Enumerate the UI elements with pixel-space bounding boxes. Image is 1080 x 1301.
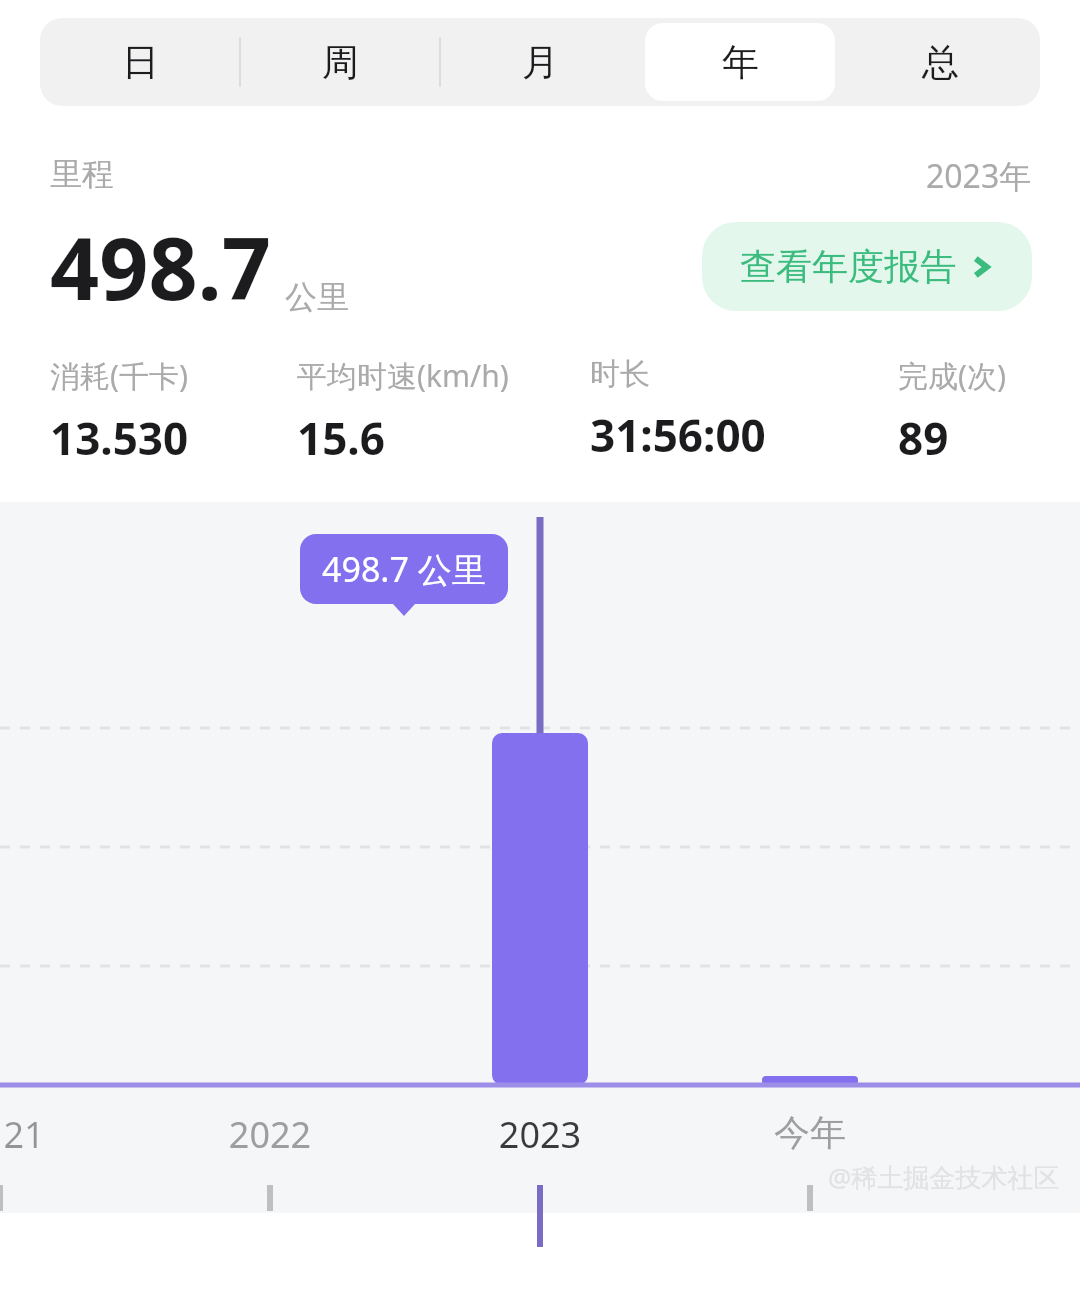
staticText: 年 (722, 39, 759, 86)
staticText: 31:56:00 (590, 405, 766, 465)
button[interactable]: 日 (45, 23, 235, 101)
staticText: 消耗(千卡) (50, 355, 188, 396)
staticText: 今年 (758, 1110, 862, 1155)
button[interactable]: 查看年度报告 (702, 222, 1032, 311)
staticText: 日 (122, 39, 159, 86)
button[interactable]: 总 (845, 23, 1035, 101)
staticText: 里程 (50, 154, 114, 194)
staticText: 平均时速(km/h) (297, 355, 509, 396)
staticText: 周 (322, 39, 359, 86)
staticText: 2022 (218, 1110, 322, 1159)
staticText: 2023年 (926, 154, 1032, 198)
button[interactable]: 月 (445, 23, 635, 101)
staticText: 时长 (590, 355, 650, 393)
button[interactable]: 498.7 公里 (300, 534, 508, 604)
staticText: 查看年度报告 (740, 244, 956, 289)
staticText: 月 (522, 39, 559, 86)
staticText: @稀土掘金技术社区 (828, 1159, 1060, 1195)
staticText: 公里 (285, 277, 349, 317)
staticText: 13.530 (50, 408, 189, 468)
button[interactable]: 周 (245, 23, 435, 101)
button[interactable]: 年 (645, 23, 835, 101)
staticText: 498.7 公里 (322, 546, 486, 592)
staticText: 总 (922, 39, 959, 86)
staticText: 15.6 (297, 408, 385, 468)
staticText: 89 (898, 408, 949, 468)
staticText: 498.7 (50, 208, 271, 325)
staticText: 完成(次) (898, 355, 1006, 396)
staticText: 2023 (488, 1110, 592, 1159)
staticText: 21 (0, 1110, 76, 1159)
